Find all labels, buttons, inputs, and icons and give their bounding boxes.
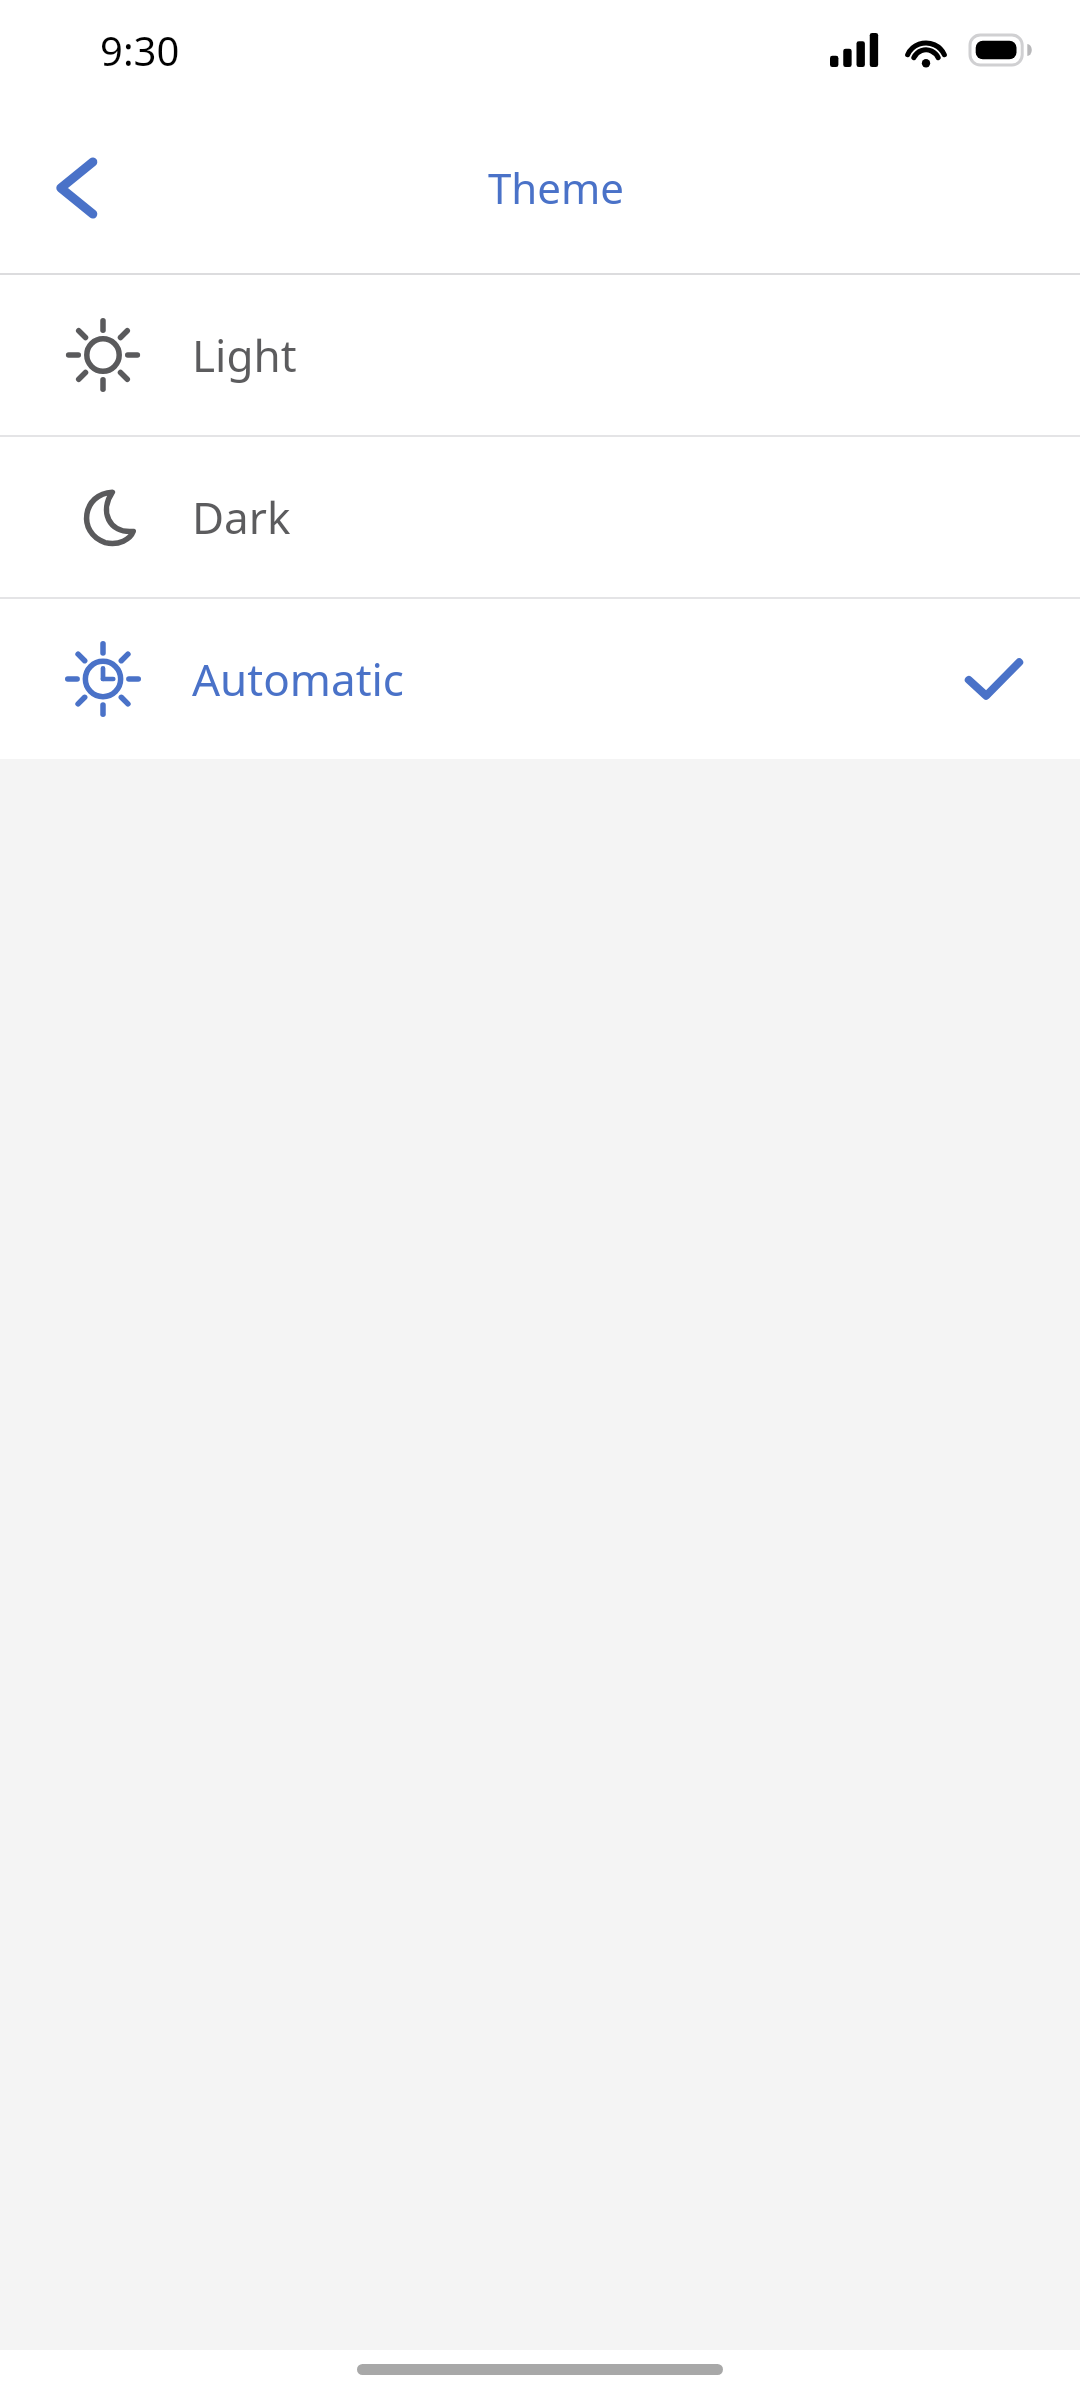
staticText: 9:30 <box>100 23 180 77</box>
button[interactable]: Light <box>0 275 1080 435</box>
staticText: Dark <box>192 487 291 547</box>
staticText: Light <box>192 325 297 385</box>
staticText: Automatic <box>192 649 404 709</box>
other: Selected <box>966 657 1022 701</box>
button[interactable]: Dark <box>0 437 1080 597</box>
staticText: Theme <box>488 159 624 216</box>
button[interactable]: Back <box>22 134 130 242</box>
button[interactable]: Automatic <box>0 599 1080 759</box>
